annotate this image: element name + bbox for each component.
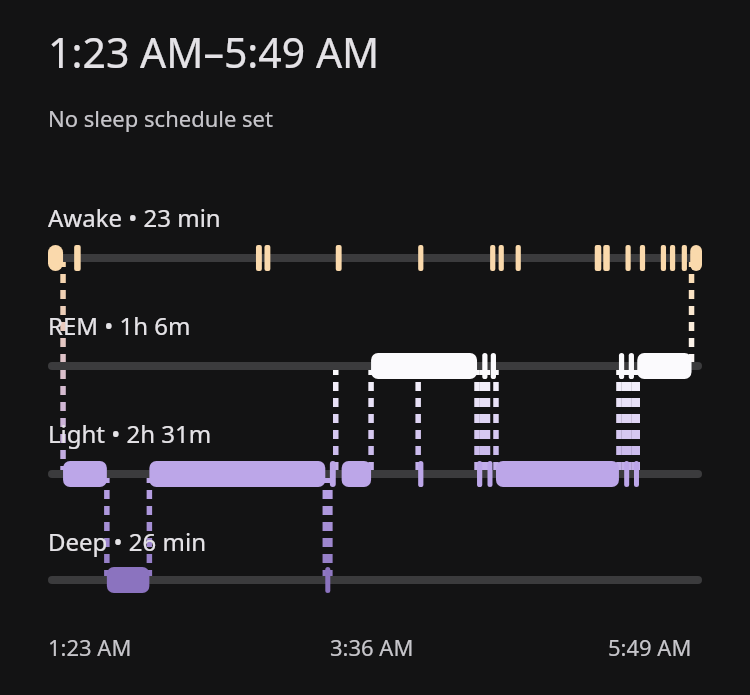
button[interactable]: No sleep schedule set [48,103,273,133]
staticText: 1:23 AM [48,632,132,662]
button[interactable]: Deep • 26 min [48,525,207,558]
button[interactable]: Awake • 23 min [48,201,221,234]
button[interactable]: 3:36 AM [330,632,414,662]
staticText: Awake • 23 min [48,201,221,234]
staticText: Light • 2h 31m [48,417,212,450]
staticText: REM • 1h 6m [48,309,191,342]
staticText: 1:23 AM–5:49 AM [48,24,380,80]
staticText: No sleep schedule set [48,103,273,133]
staticText: Deep • 26 min [48,525,207,558]
staticText: 3:36 AM [330,632,414,662]
button[interactable]: Light • 2h 31m [48,417,212,450]
button[interactable]: 1:23 AM–5:49 AM [48,24,380,80]
button[interactable]: 5:49 AM [608,632,692,662]
button[interactable]: 1:23 AM [48,632,132,662]
staticText: 5:49 AM [608,632,692,662]
button[interactable]: REM • 1h 6m [48,309,191,342]
